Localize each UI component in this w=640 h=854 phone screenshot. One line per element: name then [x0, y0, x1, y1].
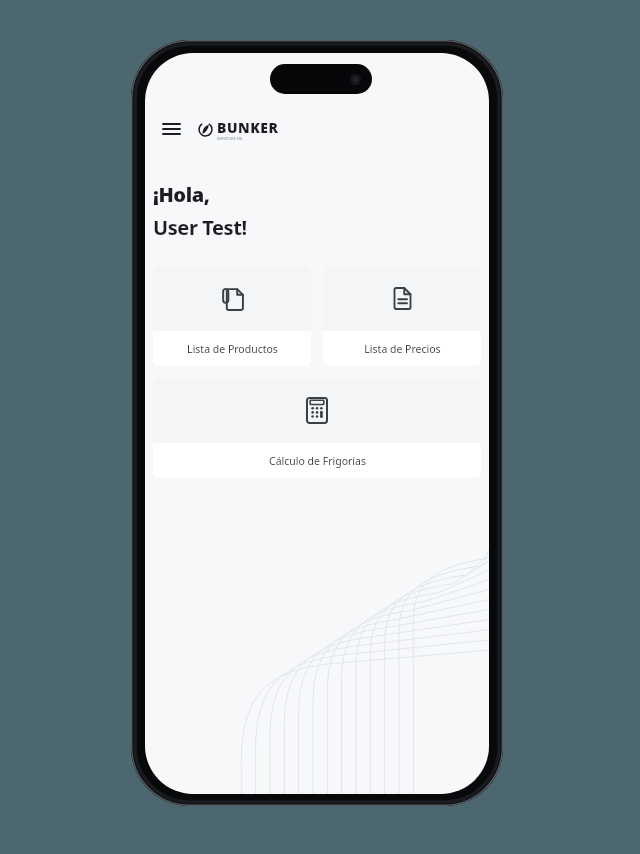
staticText: Lista de Precios: [364, 342, 441, 356]
button[interactable]: Lista de Precios: [323, 266, 481, 366]
staticText: SERVICIOS SRL: [217, 137, 244, 141]
button[interactable]: Cálculo de Frigorías: [153, 378, 481, 478]
staticText: ¡Hola,: [153, 181, 210, 208]
staticText: User Test!: [153, 214, 247, 241]
button[interactable]: Menu: [153, 111, 189, 147]
staticText: Lista de Productos: [187, 342, 278, 356]
button[interactable]: Lista de Productos: [153, 266, 311, 366]
staticText: Cálculo de Frigorías: [269, 454, 366, 468]
staticText: BUNKER: [217, 118, 279, 137]
